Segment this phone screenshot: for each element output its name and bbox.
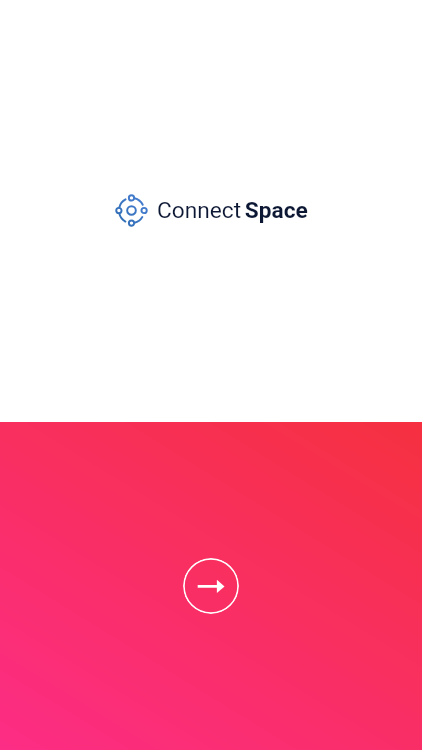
staticText: Connect Space [157,197,308,224]
button[interactable]: Next [183,558,239,614]
